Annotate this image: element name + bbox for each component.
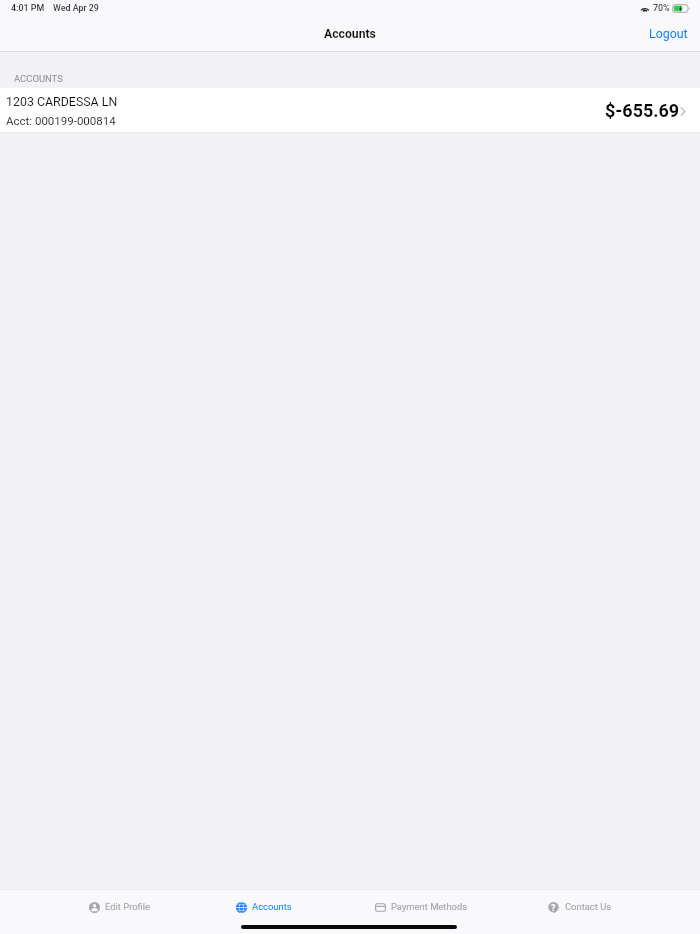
staticText: Acct: 000199-000814: [6, 114, 116, 127]
staticText: $-655.69: [605, 100, 680, 121]
staticText: 70%: [653, 3, 670, 13]
button[interactable]: ?: [541, 892, 623, 920]
button[interactable]: 1203 CARDESSA LN: [0, 88, 700, 132]
staticText: 1203 CARDESSA LN: [6, 94, 118, 109]
staticText: Payment Methods: [391, 901, 468, 912]
button[interactable]: Accounts: [229, 892, 305, 920]
staticText: Wed Apr 29: [53, 3, 99, 13]
button[interactable]: Edit Profile: [82, 892, 170, 920]
staticText: Contact Us: [565, 901, 612, 912]
staticText: Accounts: [252, 901, 292, 912]
staticText: ?: [551, 902, 556, 913]
button[interactable]: Logout: [637, 24, 700, 43]
staticText: ACCOUNTS: [14, 73, 63, 84]
staticText: Logout: [649, 26, 688, 41]
button[interactable]: Payment Methods: [367, 892, 477, 920]
staticText: Edit Profile: [105, 901, 151, 912]
staticText: 4:01 PM: [11, 3, 45, 13]
staticText: Accounts: [324, 27, 376, 41]
